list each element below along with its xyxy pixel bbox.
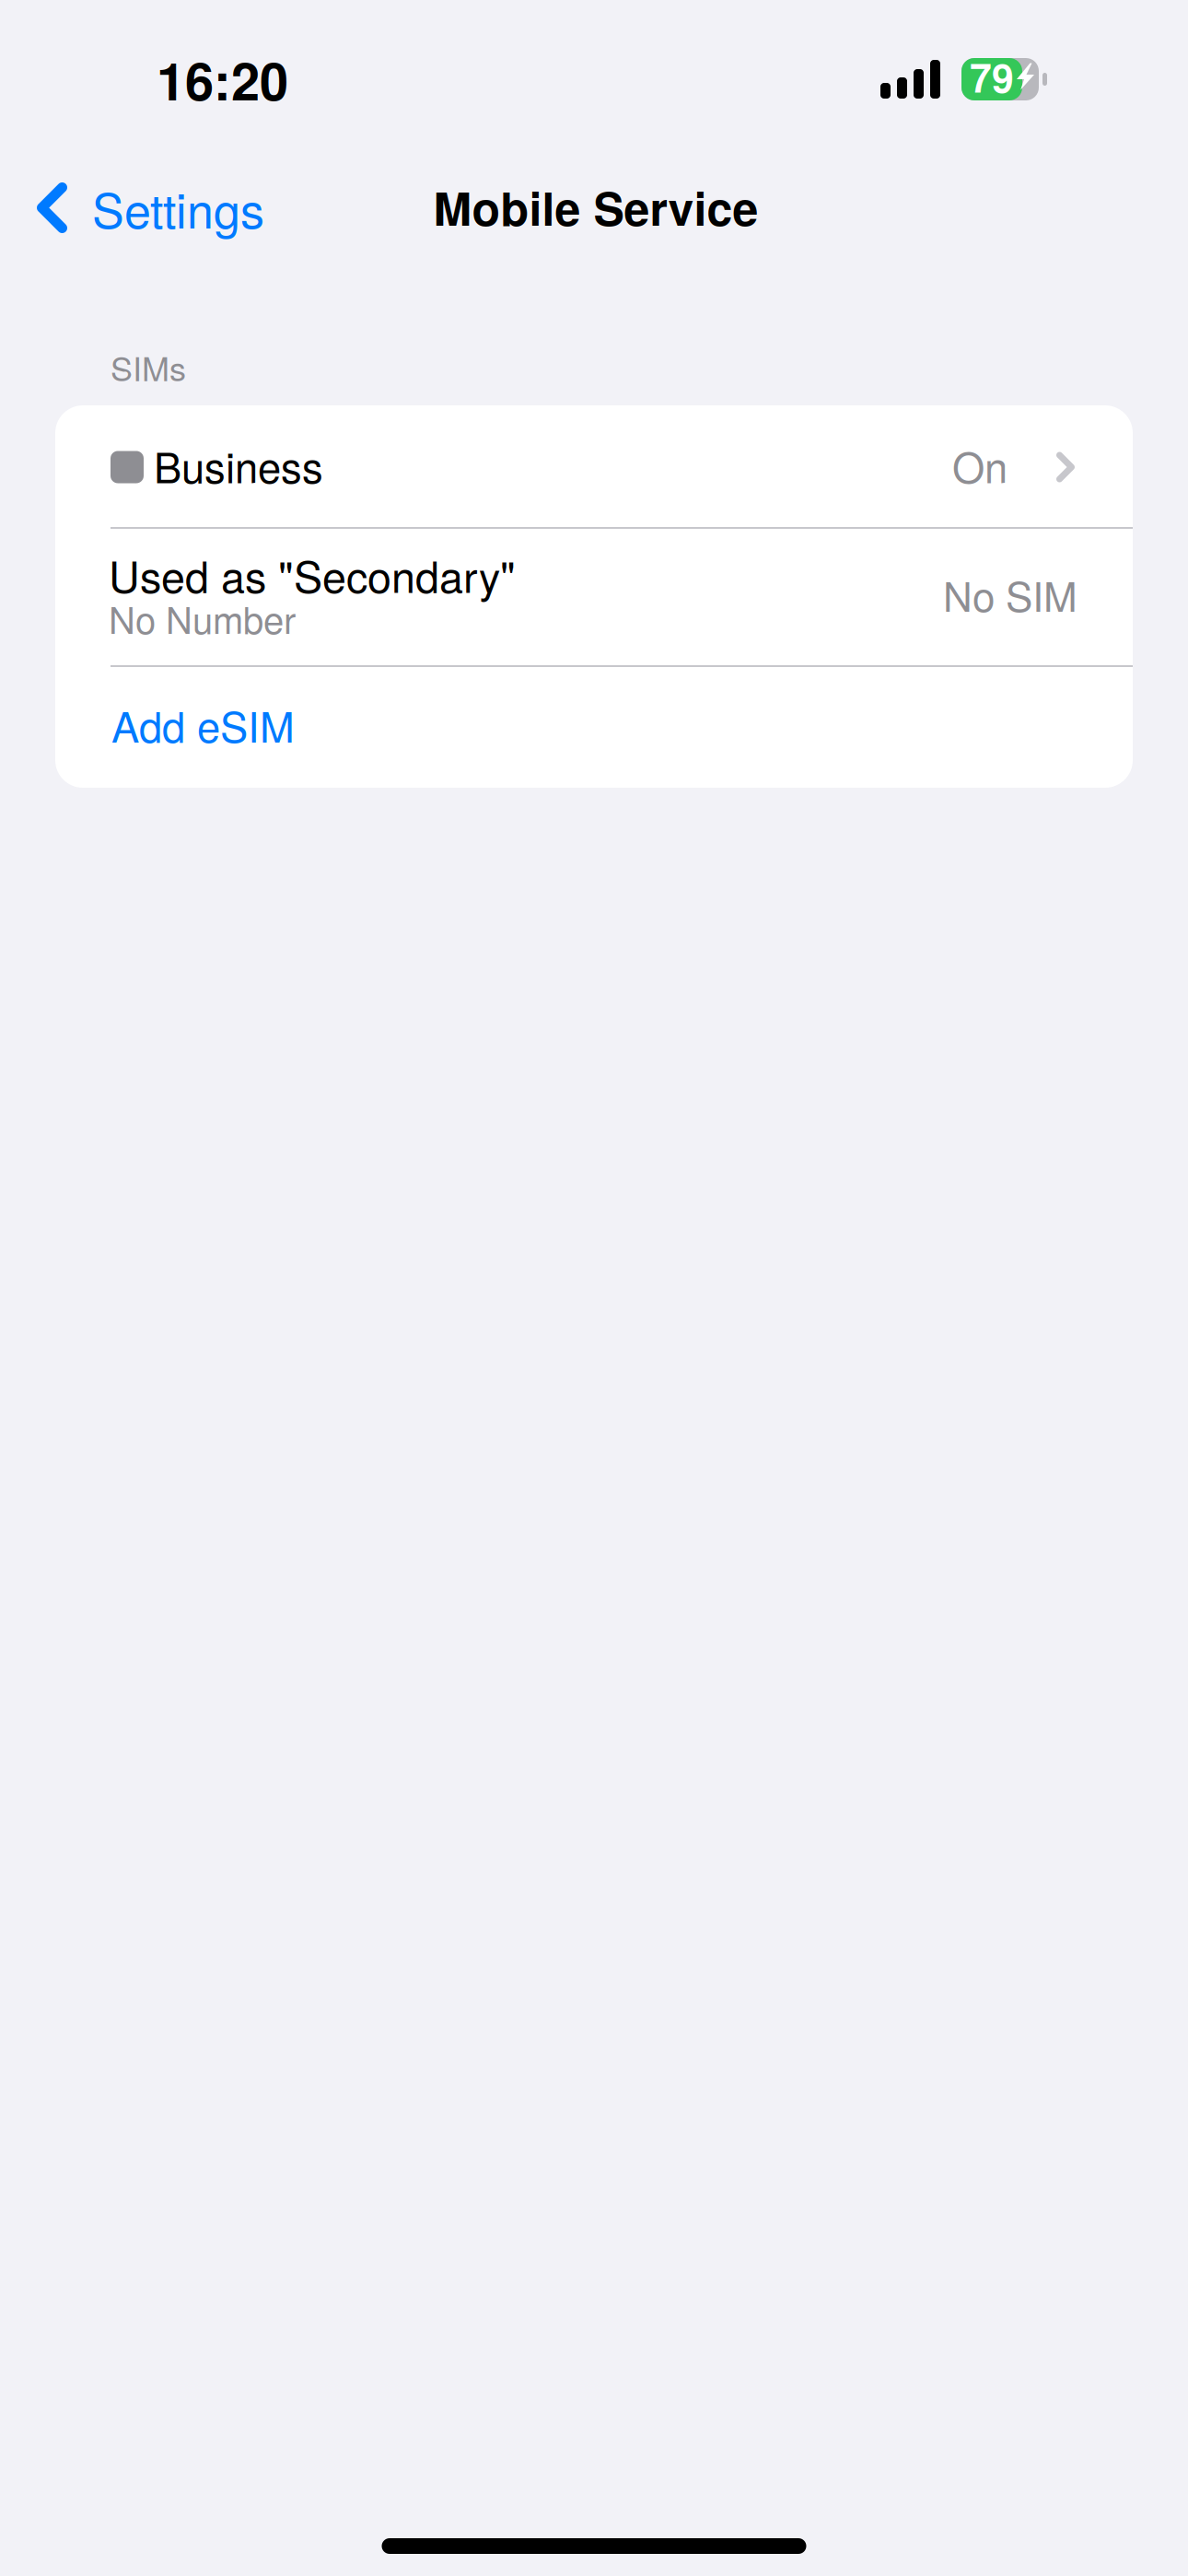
- staticText: No SIM: [943, 565, 1077, 623]
- button[interactable]: Settings: [0, 157, 387, 259]
- staticText: Add eSIM: [111, 695, 295, 754]
- staticText: SIMs: [111, 343, 186, 391]
- staticText: Settings: [92, 173, 264, 242]
- staticText: 79: [970, 48, 1014, 105]
- staticText: Business: [154, 435, 323, 495]
- staticText: 16:20: [157, 42, 288, 116]
- button[interactable]: Add eSIM: [55, 667, 1133, 788]
- staticText: No Number: [109, 591, 296, 644]
- button[interactable]: Used as "Secondary": [55, 529, 1133, 665]
- button[interactable]: Business: [55, 405, 1133, 527]
- staticText: On: [952, 435, 1007, 495]
- staticText: Mobile Service: [433, 174, 758, 240]
- staticText: Used as "Secondary": [109, 544, 516, 605]
